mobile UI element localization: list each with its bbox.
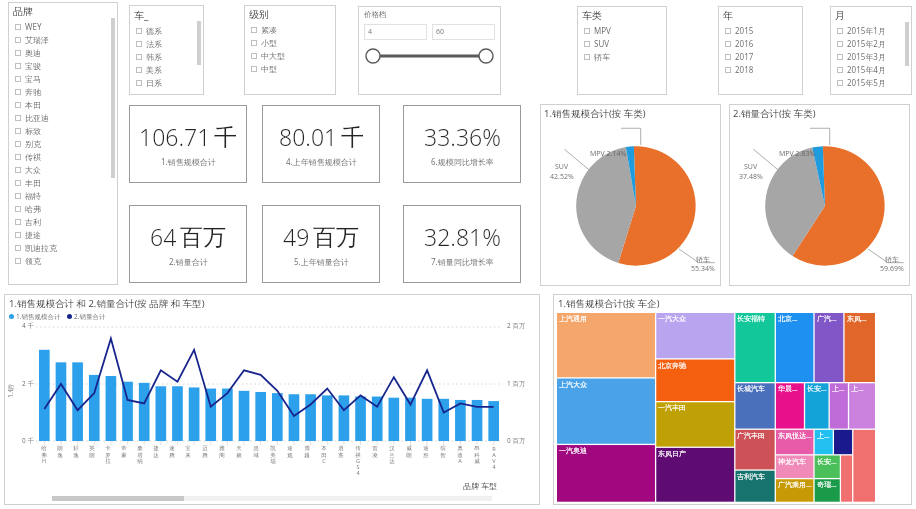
staticText: 车_ — [134, 8, 149, 22]
staticText: 2 千 — [22, 379, 34, 388]
button[interactable]: 日系 — [134, 76, 201, 89]
staticText: 一汽奥迪 — [559, 446, 655, 455]
button[interactable]: 车_ — [129, 5, 204, 95]
button[interactable]: 德系 — [134, 24, 201, 37]
staticText: 华晨... — [778, 384, 804, 394]
button[interactable]: 2015年3月 — [835, 50, 909, 63]
button[interactable]: 小型 — [249, 36, 333, 49]
button[interactable]: 福特 — [13, 189, 115, 202]
button[interactable]: 丰田 — [13, 176, 115, 189]
button[interactable]: 领克 — [13, 254, 115, 267]
staticText: 42.52% — [550, 172, 574, 182]
button[interactable]: 标致 — [13, 124, 115, 137]
button[interactable]: SUV — [582, 37, 664, 50]
button[interactable] — [52, 496, 492, 501]
staticText: 博越 — [304, 445, 310, 458]
button[interactable]: MPV — [582, 24, 664, 37]
button[interactable]: 传祺 — [13, 150, 115, 163]
staticText: SUV — [594, 38, 610, 49]
button[interactable]: 比亚迪 — [13, 111, 115, 124]
staticText: 北京... — [778, 314, 814, 324]
staticText: 雷凌 — [372, 445, 378, 458]
button[interactable]: 2015年5月 — [835, 76, 909, 89]
button[interactable]: 中大型 — [249, 49, 333, 62]
staticText: 1.销售规模合计 — [6, 384, 16, 398]
button[interactable]: 1.销售规模合计 和 2.销量合计(按 品牌 和 车型) — [4, 294, 540, 505]
button[interactable]: 80.01 — [262, 105, 380, 183]
button[interactable]: 吉利 — [13, 215, 115, 228]
button[interactable]: 艾瑞泽 — [13, 33, 115, 46]
button[interactable]: 宝骏 — [13, 59, 115, 72]
staticText: 东风悦达... — [778, 431, 814, 441]
staticText: 迈腾 — [202, 445, 208, 458]
button[interactable]: 年 — [718, 6, 803, 95]
staticText: 广汽... — [817, 314, 844, 324]
staticText: 轿车 — [696, 255, 710, 264]
button[interactable]: 2018 — [723, 63, 800, 76]
button[interactable]: 价格档 — [358, 6, 501, 95]
staticText: 思域 — [253, 445, 259, 458]
button[interactable]: 捷途 — [13, 228, 115, 241]
staticText: 捷途 — [25, 230, 41, 240]
button[interactable]: 中型 — [249, 62, 333, 75]
button[interactable]: 韩系 — [134, 50, 201, 63]
staticText: 千 — [341, 123, 364, 152]
staticText: 2.销量合计(按 车类) — [733, 107, 816, 120]
staticText: 艾瑞泽 — [25, 35, 49, 45]
button[interactable]: 宝马 — [13, 72, 115, 85]
button[interactable]: 大众 — [13, 163, 115, 176]
staticText: 37.48% — [739, 172, 763, 182]
staticText: 长城汽车 — [737, 384, 774, 393]
button[interactable]: 1.销售规模合计(按 车企) — [553, 294, 912, 505]
staticText: 威朗 — [406, 445, 412, 458]
staticText: 长安... — [807, 384, 829, 394]
button[interactable]: 1.销售规模合计(按 车类) — [540, 104, 721, 286]
staticText: 1.销售规模合计(按 车类) — [544, 107, 646, 120]
button[interactable]: 奔驰 — [13, 85, 115, 98]
staticText: 轿车 — [594, 52, 610, 62]
button[interactable]: 奥迪 — [13, 46, 115, 59]
button[interactable]: 哈弗 — [13, 202, 115, 215]
staticText: 品牌 车型 — [463, 480, 498, 491]
button[interactable]: 级别 — [244, 5, 336, 95]
button[interactable]: 车类 — [577, 6, 667, 95]
button[interactable]: 品牌 — [8, 2, 118, 285]
button[interactable]: 2015年4月 — [835, 63, 909, 76]
staticText: 长安... — [817, 457, 840, 467]
button[interactable]: 64 — [129, 205, 247, 283]
staticText: 1.销售规模合计(按 车企) — [558, 297, 660, 310]
staticText: 上... — [817, 431, 833, 441]
staticText: 33.36% — [424, 121, 501, 152]
button[interactable]: 月 — [830, 6, 912, 95]
button[interactable]: 本田 — [13, 98, 115, 111]
button[interactable]: 轿车 — [582, 50, 664, 63]
button[interactable]: 2015年1月 — [835, 24, 909, 37]
staticText: 北京奔驰 — [658, 361, 734, 370]
button[interactable]: 美系 — [134, 63, 201, 76]
button[interactable]: 32.81% — [403, 205, 521, 283]
button[interactable]: 2015年2月 — [835, 37, 909, 50]
staticText: 一汽大众 — [658, 314, 734, 323]
button[interactable]: 2016 — [723, 37, 800, 50]
staticText: 领克 — [25, 256, 41, 266]
staticText: 2015年5月 — [847, 77, 886, 88]
button[interactable]: 49 — [262, 205, 380, 283]
button[interactable]: 2017 — [723, 50, 800, 63]
staticText: 2.销量合计 — [74, 312, 106, 321]
staticText: 凯美瑞 — [270, 445, 276, 464]
button[interactable]: 凯迪拉克 — [13, 241, 115, 254]
button[interactable]: 2015 — [723, 24, 800, 37]
staticText: 49 — [283, 221, 310, 252]
staticText: RAV4 — [491, 445, 497, 471]
button[interactable]: 法系 — [134, 37, 201, 50]
button[interactable]: 106.71 — [129, 105, 247, 183]
button[interactable]: WEY — [13, 20, 115, 33]
staticText: 美系 — [146, 65, 162, 75]
button[interactable]: 别克 — [13, 137, 115, 150]
staticText: 2015年1月 — [847, 25, 886, 36]
staticText: 昂科威 — [474, 445, 480, 464]
button[interactable]: 紧凑 — [249, 23, 333, 36]
button[interactable]: 2.销量合计(按 车类) — [729, 104, 910, 286]
staticText: 百万 — [180, 223, 226, 252]
button[interactable]: 33.36% — [403, 105, 521, 183]
